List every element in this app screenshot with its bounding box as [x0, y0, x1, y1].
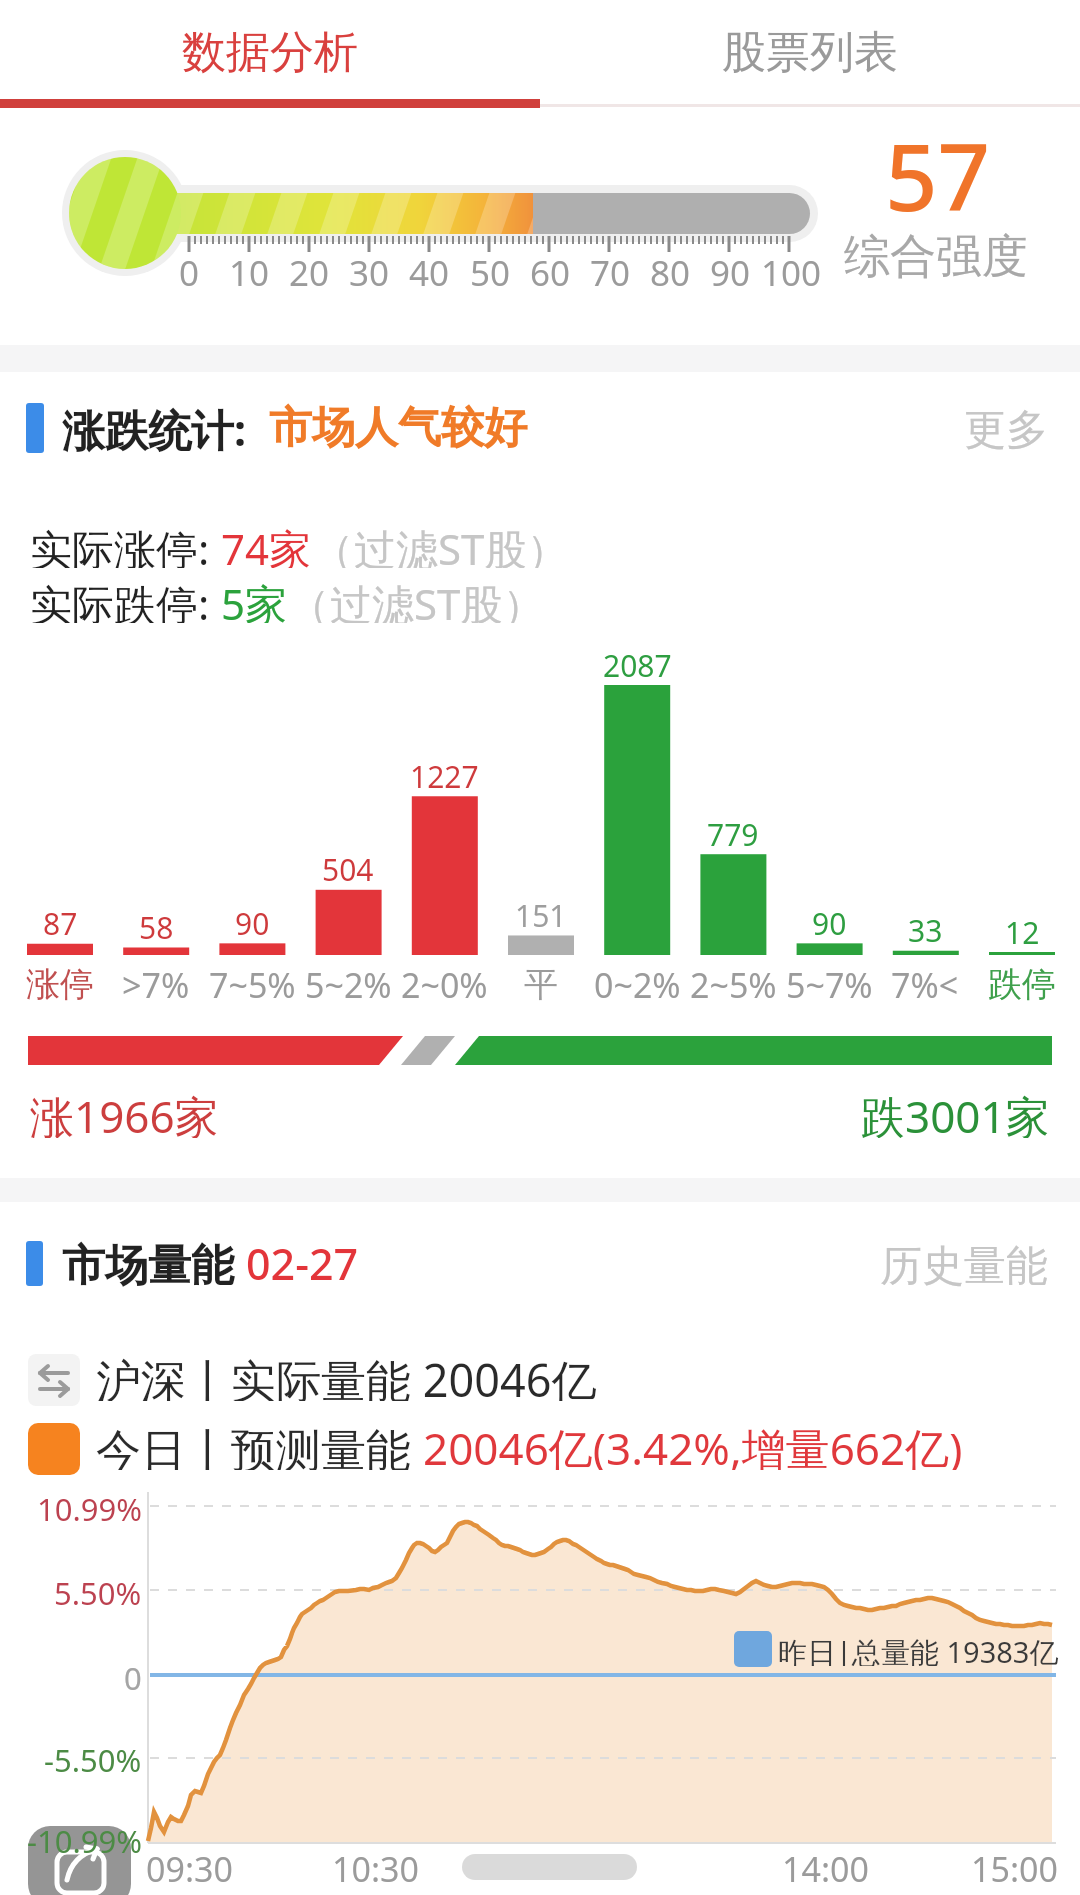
staticText: 1227 — [410, 756, 479, 792]
staticText: 90 — [812, 903, 847, 939]
staticText: -10.99% — [27, 1820, 142, 1856]
staticText: 30 — [349, 249, 390, 287]
staticText: 实际涨停: — [30, 520, 221, 568]
staticText: 02-27 — [246, 1234, 359, 1290]
staticText: 7~5% — [209, 962, 296, 1006]
staticText: 80 — [650, 249, 691, 287]
staticText: -5.50% — [44, 1739, 142, 1775]
staticText: 60 — [530, 249, 571, 287]
staticText: 779 — [707, 814, 759, 850]
staticText: 50 — [470, 249, 511, 287]
staticText: 股票列表 — [722, 25, 898, 80]
button[interactable] — [28, 1826, 131, 1895]
staticText: 综合强度 — [844, 228, 1028, 284]
staticText: 5.50% — [54, 1572, 142, 1608]
staticText: 20046亿(3.42%,增量662亿) — [423, 1418, 963, 1470]
staticText: 历史量能 — [880, 1240, 1048, 1288]
staticText: 涨停 — [26, 963, 94, 1006]
staticText: 100 — [761, 249, 822, 287]
staticText: 09:30 — [146, 1846, 233, 1886]
button[interactable]: 数据分析 — [0, 0, 540, 104]
staticText: 33 — [908, 910, 943, 946]
staticText: 市场人气较好 — [269, 401, 527, 455]
staticText: 10 — [229, 249, 270, 287]
staticText: 2~5% — [690, 962, 777, 1006]
staticText: 504 — [322, 849, 374, 885]
staticText: 沪深丨实际量能 20046亿 — [96, 1349, 597, 1401]
staticText: 实际跌停: — [30, 575, 221, 623]
staticText: （过滤ST股） — [288, 575, 545, 623]
staticText: 20 — [289, 249, 330, 287]
staticText: 平 — [524, 963, 558, 1006]
button[interactable]: 历史量能 — [880, 1240, 1048, 1288]
staticText: 57 — [885, 113, 991, 223]
staticText: 数据分析 — [182, 25, 358, 80]
staticText: 涨1966家 — [30, 1086, 219, 1138]
staticText: 58 — [139, 907, 174, 943]
staticText: 0 — [179, 249, 200, 287]
staticText: 涨跌统计: — [62, 400, 269, 456]
staticText: 10.99% — [37, 1488, 142, 1524]
staticText: 跌3001家 — [861, 1086, 1050, 1138]
staticText: 74家 — [221, 520, 312, 568]
staticText: 15:00 — [971, 1846, 1058, 1886]
staticText: 更多 — [964, 404, 1048, 452]
button[interactable]: 更多 — [940, 404, 1048, 452]
staticText: （过滤ST股） — [312, 520, 569, 568]
staticText: 14:00 — [782, 1846, 869, 1886]
staticText: 90 — [235, 903, 270, 939]
staticText: 5~2% — [305, 962, 392, 1006]
staticText: 12 — [1005, 912, 1040, 948]
staticText: 0~2% — [594, 962, 681, 1006]
staticText: 90 — [710, 249, 751, 287]
staticText: 0 — [124, 1657, 142, 1693]
staticText: 7%< — [891, 962, 959, 1006]
staticText: 昨日|总量能 19383亿 — [778, 1632, 1059, 1666]
staticText: 市场量能 — [62, 1234, 246, 1290]
staticText: 70 — [590, 249, 631, 287]
staticText: 40 — [409, 249, 450, 287]
staticText: 2087 — [603, 645, 672, 681]
staticText: 跌停 — [988, 963, 1056, 1006]
staticText: >7% — [122, 962, 190, 1006]
staticText: 10:30 — [332, 1846, 419, 1886]
staticText: 87 — [43, 903, 78, 939]
staticText: 5家 — [221, 575, 288, 623]
staticText: 151 — [515, 895, 567, 931]
staticText: 5~7% — [786, 962, 873, 1006]
staticText: 今日丨预测量能 — [96, 1418, 423, 1470]
button[interactable]: 股票列表 — [540, 0, 1080, 104]
staticText: 2~0% — [401, 962, 488, 1006]
